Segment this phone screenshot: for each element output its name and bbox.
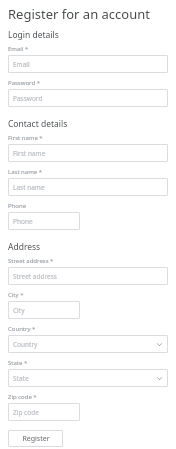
staticText: Email [13, 60, 30, 69]
staticText: Login details [8, 29, 59, 41]
staticText: Register for an account [8, 5, 150, 23]
staticText: Street address * [8, 257, 54, 265]
button[interactable]: Last name [8, 178, 168, 196]
staticText: Email * [8, 45, 29, 53]
staticText: Phone [8, 202, 27, 210]
staticText: Register [22, 434, 50, 444]
button[interactable]: Password [8, 89, 168, 107]
staticText: Phone [13, 217, 33, 226]
staticText: First name [13, 149, 46, 158]
other: Open dropdown [156, 375, 163, 382]
staticText: Last name * [8, 168, 43, 176]
button[interactable]: City [8, 301, 80, 319]
staticText: Country * [8, 325, 36, 333]
staticText: Password * [8, 79, 41, 87]
staticText: Password [13, 94, 43, 103]
button[interactable]: Zip code [8, 403, 80, 421]
staticText: City [13, 306, 25, 315]
button[interactable]: Country [8, 335, 168, 353]
button[interactable]: First name [8, 144, 168, 162]
button[interactable]: Email [8, 55, 168, 73]
button[interactable]: Street address [8, 267, 168, 285]
staticText: First name * [8, 134, 43, 142]
staticText: Zip code [13, 408, 39, 417]
staticText: State * [8, 359, 28, 367]
staticText: Last name [13, 183, 45, 192]
button[interactable]: Register [8, 430, 63, 447]
staticText: City * [8, 291, 24, 299]
staticText: Address [8, 241, 41, 253]
staticText: Contact details [8, 118, 68, 130]
button[interactable]: State [8, 369, 168, 387]
other: Open dropdown [156, 341, 163, 348]
staticText: Country [13, 340, 38, 349]
staticText: Zip code * [8, 393, 37, 401]
staticText: State [13, 374, 29, 383]
staticText: Street address [13, 272, 57, 281]
button[interactable]: Phone [8, 212, 80, 230]
